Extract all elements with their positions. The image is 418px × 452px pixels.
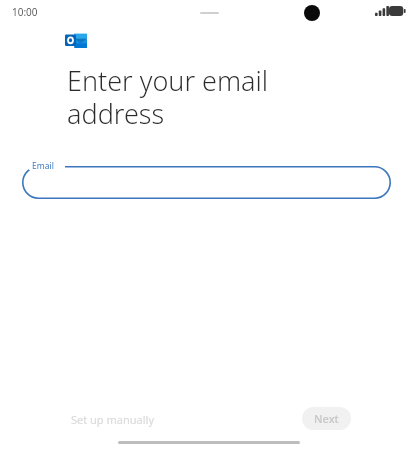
button[interactable]: Email input field: [22, 158, 391, 207]
button[interactable]: Next: [302, 407, 351, 430]
staticText: Next: [314, 411, 339, 426]
staticText: Enter your email address: [67, 62, 269, 132]
button[interactable]: Set up manually: [62, 407, 164, 432]
staticText: Set up manually: [71, 412, 155, 427]
staticText: 10:00: [12, 5, 38, 19]
other: Outlook: [65, 32, 87, 48]
staticText: Email: [32, 160, 54, 172]
